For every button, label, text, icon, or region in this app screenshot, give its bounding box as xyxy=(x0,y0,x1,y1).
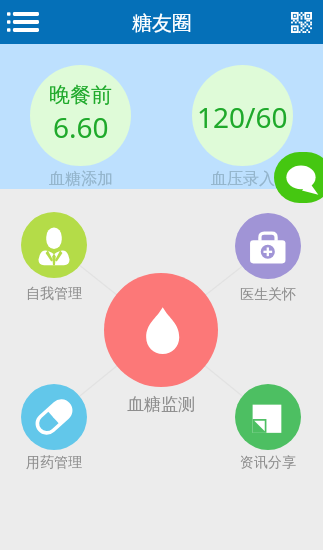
staticText: 血糖添加 xyxy=(49,169,113,189)
button[interactable]: 资讯分享 xyxy=(235,384,301,472)
button[interactable]: 血糖监测 xyxy=(104,273,218,415)
staticText: 医生关怀 xyxy=(240,286,296,304)
staticText: 糖友圈 xyxy=(132,11,192,36)
button[interactable]: 自我管理 xyxy=(21,212,87,303)
button[interactable]: Scan QR code xyxy=(280,1,322,43)
staticText: 120/60 xyxy=(197,98,288,136)
staticText: 资讯分享 xyxy=(240,454,296,472)
button[interactable]: 晚餐前 xyxy=(30,65,131,189)
staticText: 自我管理 xyxy=(26,285,82,303)
staticText: 6.60 xyxy=(53,108,109,146)
staticText: 血压录入 xyxy=(211,169,275,189)
button[interactable]: Chat xyxy=(274,152,323,203)
staticText: 血糖监测 xyxy=(127,394,195,415)
staticText: 用药管理 xyxy=(26,454,82,472)
button[interactable]: Menu xyxy=(1,0,45,44)
button[interactable]: 医生关怀 xyxy=(235,213,301,304)
button[interactable]: 120/60 xyxy=(192,65,293,189)
button[interactable]: 用药管理 xyxy=(21,384,87,472)
staticText: 晚餐前 xyxy=(49,82,112,108)
